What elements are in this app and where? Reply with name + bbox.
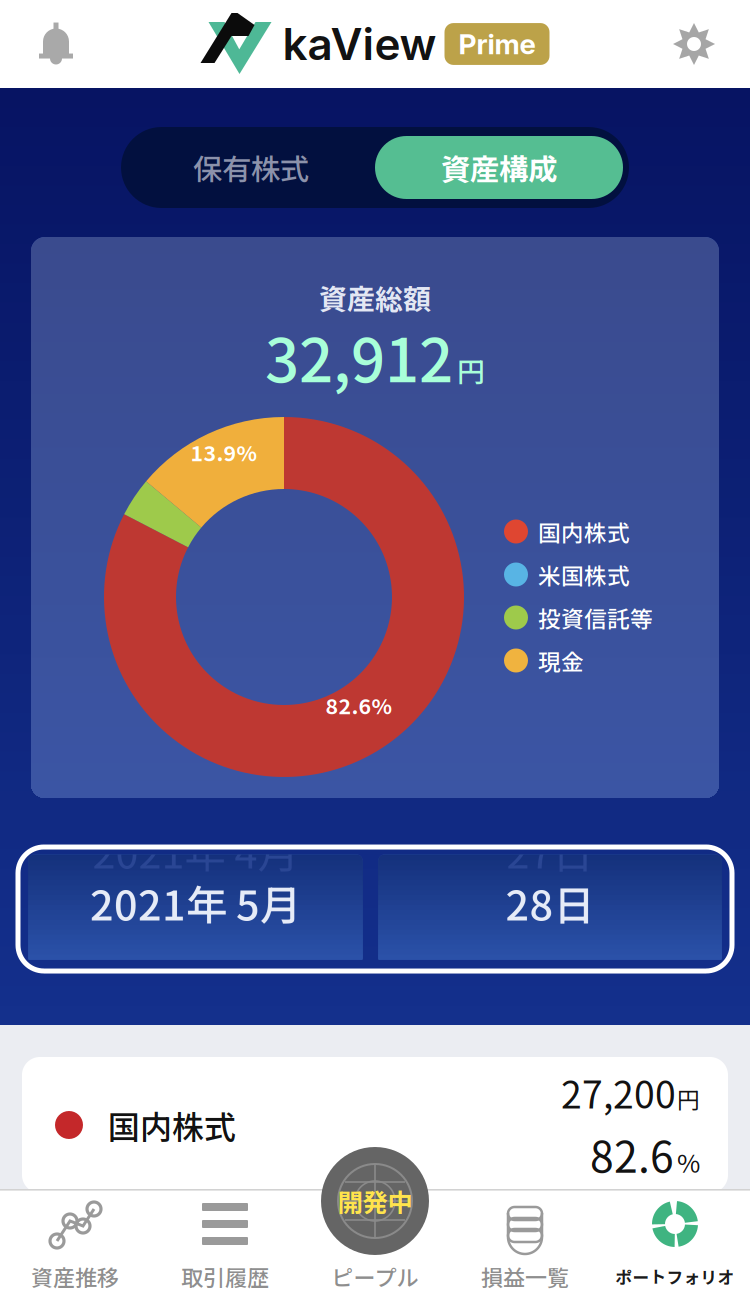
button[interactable]: ポートフォリオ — [600, 1199, 750, 1289]
staticText: 国内株式 — [108, 1102, 236, 1148]
staticText: 82.6 — [590, 1123, 674, 1185]
staticText: 米国株式 — [538, 558, 630, 591]
staticText: kaView — [282, 17, 436, 71]
staticText: 82.6% — [325, 690, 392, 720]
button[interactable]: 取引履歴 — [150, 1199, 300, 1289]
staticText: 32,912 — [265, 312, 453, 399]
button[interactable]: 損益一覧 — [450, 1199, 600, 1289]
button[interactable]: 保有株式 — [127, 133, 375, 202]
staticText: 取引履歴 — [181, 1261, 269, 1292]
staticText: 27,200 — [561, 1065, 676, 1119]
button[interactable]: 通知 — [20, 8, 92, 80]
staticText: 資産推移 — [31, 1261, 119, 1292]
staticText: 投資信託等 — [538, 601, 653, 634]
staticText: 資産総額 — [319, 277, 431, 317]
staticText: 損益一覧 — [481, 1261, 569, 1292]
button[interactable]: 資産推移 — [0, 1199, 150, 1289]
staticText: 国内株式 — [538, 515, 630, 548]
staticText: 保有株式 — [193, 146, 309, 189]
staticText: 2021年 5月 — [90, 873, 301, 932]
staticText: 2021年 4月 — [92, 821, 298, 880]
staticText: ポートフォリオ — [615, 1264, 734, 1288]
staticText: 開発中 — [337, 1183, 412, 1219]
staticText: 円 — [677, 1082, 700, 1115]
button[interactable]: ピープル — [300, 1199, 450, 1289]
staticText: % — [677, 1143, 700, 1180]
staticText: 現金 — [538, 644, 584, 677]
staticText: 円 — [457, 350, 485, 390]
staticText: ピープル — [331, 1261, 418, 1292]
staticText: 13.9% — [190, 437, 257, 467]
staticText: 27日 — [506, 821, 593, 880]
button[interactable]: 資産構成 — [375, 136, 623, 199]
button[interactable]: 国内株式 — [22, 1057, 728, 1193]
staticText: 資産構成 — [441, 146, 557, 189]
button[interactable]: 27日 — [378, 854, 721, 963]
button[interactable]: 設定 — [658, 8, 730, 80]
staticText: Prime — [458, 27, 535, 61]
staticText: 28日 — [505, 873, 594, 932]
button[interactable]: 2021年 4月 — [28, 854, 362, 963]
